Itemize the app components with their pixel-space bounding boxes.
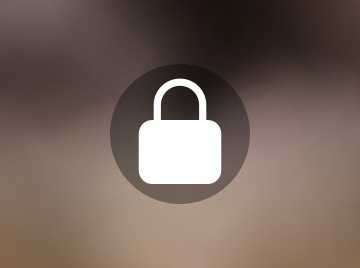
button[interactable]: Locked — tap to unlock — [0, 0, 360, 268]
